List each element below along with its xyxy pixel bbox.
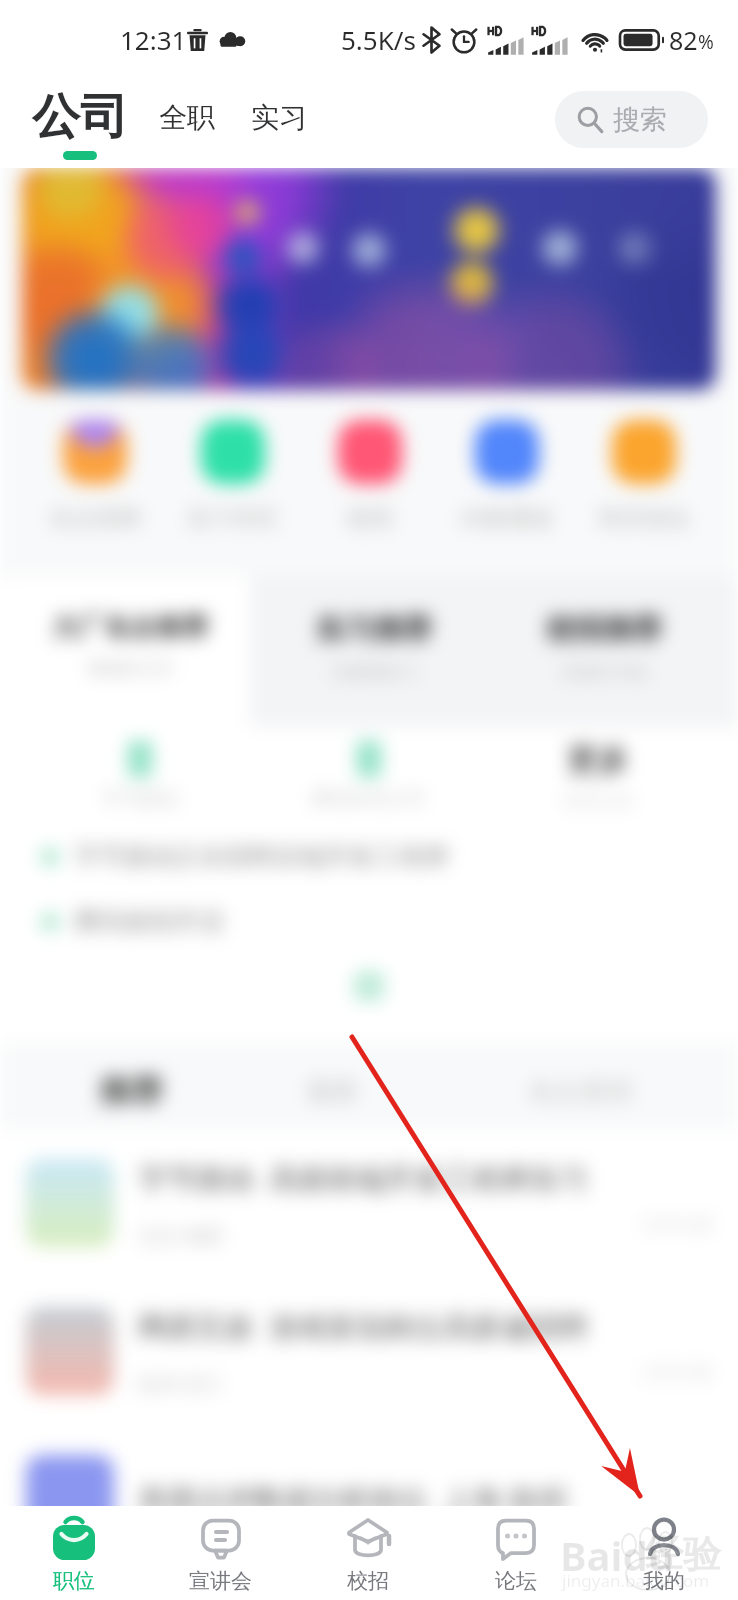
staticText: 5.5K/s <box>341 22 416 57</box>
staticText: 82 <box>669 23 698 57</box>
staticText: 12:31 <box>120 22 187 57</box>
staticText: % <box>698 29 714 55</box>
staticText: 校招推荐 <box>546 611 662 648</box>
staticText: 公司 <box>32 87 128 147</box>
staticText: 腾讯校招开启 <box>74 906 224 937</box>
button[interactable]: 简历优化 <box>575 420 712 533</box>
button[interactable]: 内推通道 <box>438 420 575 533</box>
button[interactable]: 实习专区 <box>164 420 301 533</box>
button[interactable]: 实习推荐 <box>316 611 432 683</box>
button[interactable]: 职位 <box>0 1506 147 1600</box>
staticText: 校招 <box>347 504 393 533</box>
staticText: 美团点评数据分析岗位 上海 急招 <box>138 1479 567 1519</box>
button[interactable]: 全职 <box>159 100 215 146</box>
staticText: 字节跳动 高级前端开发工程师实习 <box>138 1158 589 1198</box>
button[interactable]: 网易互娱 游戏策划岗位高薪诚招聘 <box>0 1277 738 1425</box>
staticText: 论坛 <box>495 1568 537 1594</box>
button[interactable]: 字节跳动 高级前端开发工程师实习 <box>0 1129 738 1277</box>
button[interactable]: 实习 <box>251 100 307 146</box>
staticText: 实习 <box>251 100 307 135</box>
staticText: 我的 <box>643 1568 685 1594</box>
staticText: jingyan.baidu.com <box>562 1569 710 1592</box>
button[interactable]: 名企招聘 <box>26 420 164 533</box>
staticText: 全职 <box>159 100 215 135</box>
button[interactable]: 论坛 <box>442 1506 590 1600</box>
staticText: 最新 <box>307 1075 359 1108</box>
staticText: 推荐 <box>99 1071 163 1111</box>
staticText: 名企招聘 <box>49 504 141 533</box>
button[interactable]: 我的 <box>590 1506 738 1600</box>
button[interactable]: 推荐 <box>99 1071 163 1111</box>
button[interactable]: 最新 <box>307 1075 359 1108</box>
staticText: 内推通道 <box>461 504 553 533</box>
button[interactable]: 公司 <box>32 87 128 160</box>
staticText: 字节跳动正在招聘后端开发工程师 <box>74 841 449 872</box>
button[interactable]: 搜索 <box>555 91 708 148</box>
staticText: 经验 <box>645 1530 721 1578</box>
staticText: 职位 <box>53 1568 95 1594</box>
staticText: 宣讲会 <box>189 1568 252 1594</box>
staticText: 实习推荐 <box>316 611 432 648</box>
button[interactable]: 宣讲会 <box>147 1506 294 1600</box>
button[interactable]: 校招 <box>301 420 438 533</box>
button[interactable]: 校招推荐 <box>546 611 662 683</box>
staticText: 校招 <box>347 1568 389 1594</box>
staticText: 搜索 <box>613 103 667 137</box>
staticText: 大厂名企推荐 <box>52 611 208 644</box>
button[interactable]: 校招 <box>294 1506 442 1600</box>
button[interactable]: 大厂名企推荐 <box>52 611 208 679</box>
staticText: 更多 <box>567 741 629 780</box>
staticText: 网易互娱 游戏策划岗位高薪诚招聘 <box>138 1306 589 1346</box>
staticText: Baidu <box>560 1528 674 1582</box>
button[interactable]: 美团点评数据分析岗位 上海 急招 <box>0 1425 738 1573</box>
